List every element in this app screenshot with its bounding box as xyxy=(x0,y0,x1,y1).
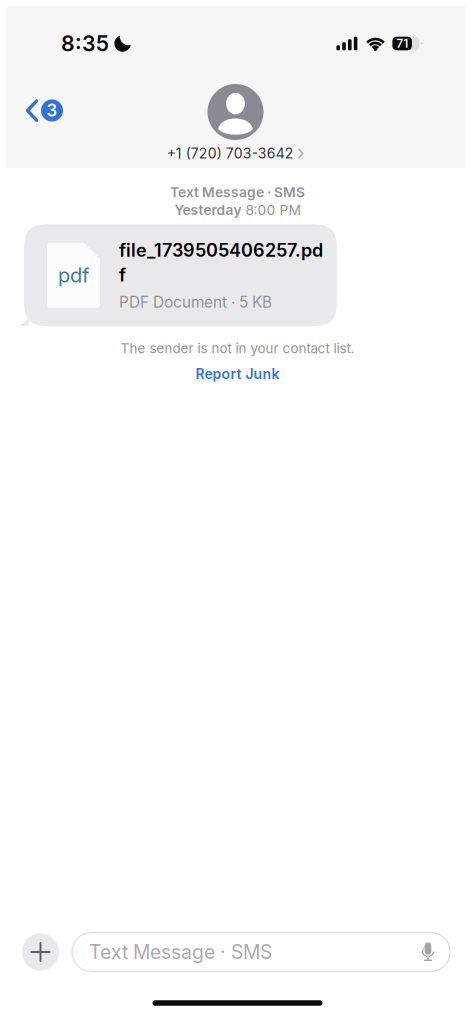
staticText: Text Message · SMS xyxy=(170,184,305,201)
button[interactable]: pdf xyxy=(24,224,337,326)
staticText: Yesterday xyxy=(174,202,241,218)
button[interactable]: Back, 3 unread xyxy=(16,90,72,131)
button[interactable]: Report Junk xyxy=(195,365,279,382)
staticText: file_1739505406257.pd xyxy=(119,239,323,261)
button[interactable]: Text Message · SMS xyxy=(72,932,450,971)
staticText: 8:00 PM xyxy=(245,202,300,218)
staticText: The sender is not in your contact list. xyxy=(120,340,354,356)
staticText: Report Junk xyxy=(195,365,279,382)
staticText: 3 xyxy=(46,100,57,121)
staticText: 71 xyxy=(396,36,408,51)
staticText: +1 (720) 703-3642 xyxy=(167,145,294,162)
button[interactable]: Add attachment xyxy=(22,933,59,970)
staticText: f xyxy=(119,264,126,286)
staticText: pdf xyxy=(58,263,89,287)
staticText: Text Message · SMS xyxy=(89,940,272,964)
staticText: 8:35 xyxy=(61,31,109,56)
staticText: PDF Document · 5 KB xyxy=(119,293,272,311)
